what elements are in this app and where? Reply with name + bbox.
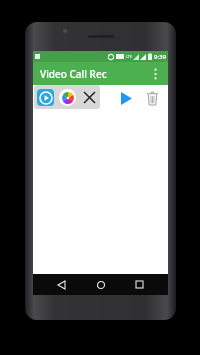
button[interactable]: Home bbox=[90, 274, 111, 295]
button[interactable]: Play bbox=[116, 88, 136, 108]
button[interactable]: Open in video player bbox=[37, 89, 54, 106]
staticText: LTE bbox=[126, 54, 132, 59]
staticText: 9:39 bbox=[154, 53, 166, 61]
button[interactable]: Recent apps bbox=[129, 274, 150, 295]
button[interactable]: Delete bbox=[142, 88, 162, 108]
staticText: 2018-04-11/08 bbox=[65, 95, 99, 102]
button[interactable]: 2018-04-11/08 bbox=[33, 85, 168, 111]
staticText: Video Call Rec bbox=[40, 67, 107, 81]
button[interactable]: More options bbox=[146, 65, 164, 83]
button[interactable]: Close bbox=[81, 89, 97, 106]
button[interactable]: Back bbox=[51, 274, 72, 295]
button[interactable]: Open in Photos bbox=[59, 89, 76, 106]
